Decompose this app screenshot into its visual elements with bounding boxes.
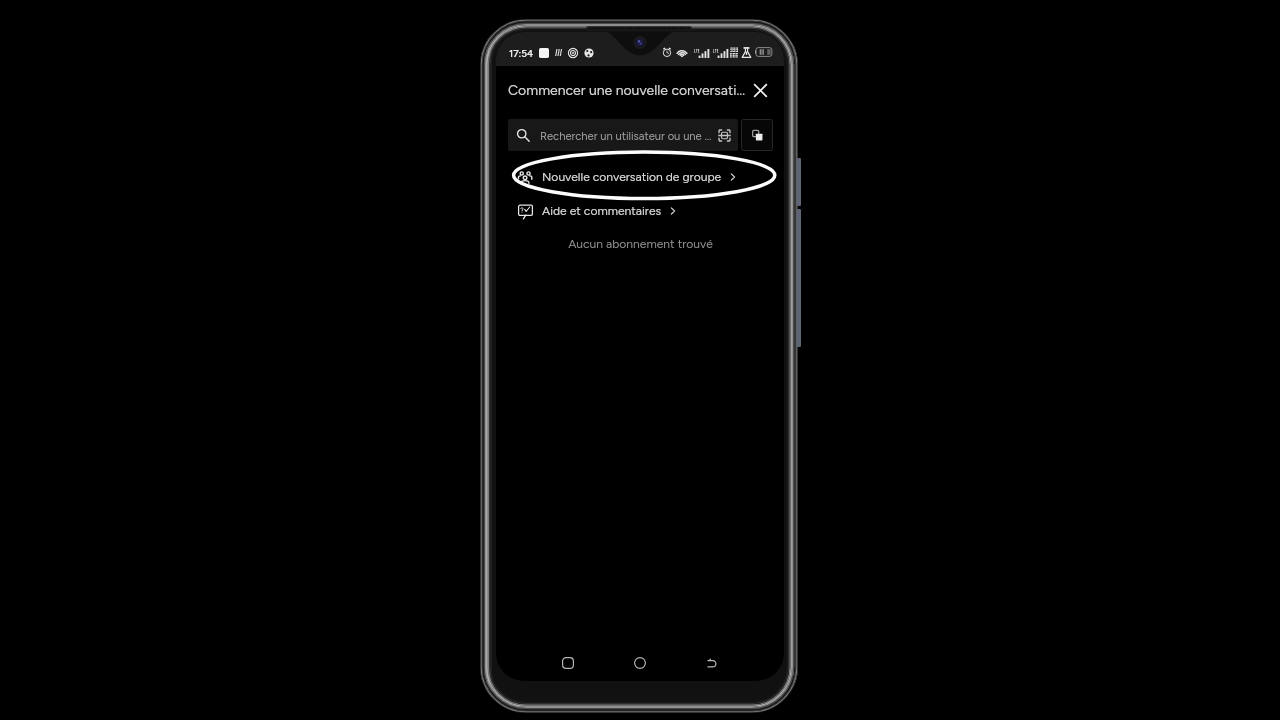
staticText: Aide et commentaires xyxy=(542,204,662,219)
button[interactable]: Rechercher un utilisateur ou une … xyxy=(508,119,738,151)
button[interactable]: Nouvelle conversation de groupe xyxy=(496,160,784,194)
button[interactable]: Récents xyxy=(548,645,588,681)
button[interactable]: Accueil xyxy=(620,645,660,681)
staticText: Nouvelle conversation de groupe xyxy=(542,170,722,185)
button[interactable]: Scanner un code xyxy=(717,128,732,143)
button[interactable]: Aide et commentaires xyxy=(496,194,784,228)
button[interactable]: Coller xyxy=(741,119,773,151)
staticText: Aucun abonnement trouvé xyxy=(568,237,713,252)
staticText: Commencer une nouvelle conversati… xyxy=(508,82,746,99)
button[interactable]: Fermer xyxy=(748,78,772,102)
staticText: 17:54 xyxy=(509,47,534,59)
button[interactable]: Retour xyxy=(692,645,732,681)
staticText: Rechercher un utilisateur ou une … xyxy=(540,129,712,142)
